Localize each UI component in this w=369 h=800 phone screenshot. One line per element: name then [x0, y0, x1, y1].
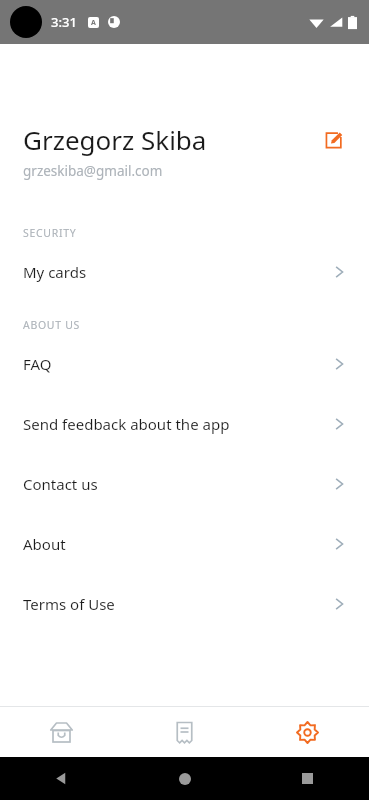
staticText: grzeskiba@gmail.com [23, 162, 163, 180]
button[interactable]: Settings [246, 707, 369, 757]
button[interactable]: About [0, 534, 369, 554]
button[interactable]: FAQ [0, 354, 369, 374]
button[interactable]: Contact us [0, 474, 369, 494]
staticText: ABOUT US [23, 318, 81, 332]
button[interactable]: Recent apps [246, 757, 369, 800]
staticText: A [91, 18, 96, 28]
staticText: SECURITY [23, 226, 77, 240]
button[interactable]: My cards [0, 262, 369, 282]
staticText: 3:31 [51, 13, 77, 31]
button[interactable]: Edit profile [317, 123, 351, 157]
staticText: Send feedback about the app [23, 414, 331, 434]
staticText: FAQ [23, 354, 331, 374]
button[interactable]: Receipts [123, 707, 246, 757]
button[interactable]: Shop [0, 707, 123, 757]
staticText: About [23, 534, 331, 554]
button[interactable]: Back [0, 757, 123, 800]
staticText: Terms of Use [23, 594, 331, 614]
staticText: Contact us [23, 474, 331, 494]
button[interactable]: Terms of Use [0, 594, 369, 614]
staticText: My cards [23, 262, 331, 282]
button[interactable]: Home [123, 757, 246, 800]
staticText: Grzegorz Skiba [23, 122, 317, 157]
button[interactable]: Send feedback about the app [0, 414, 369, 434]
